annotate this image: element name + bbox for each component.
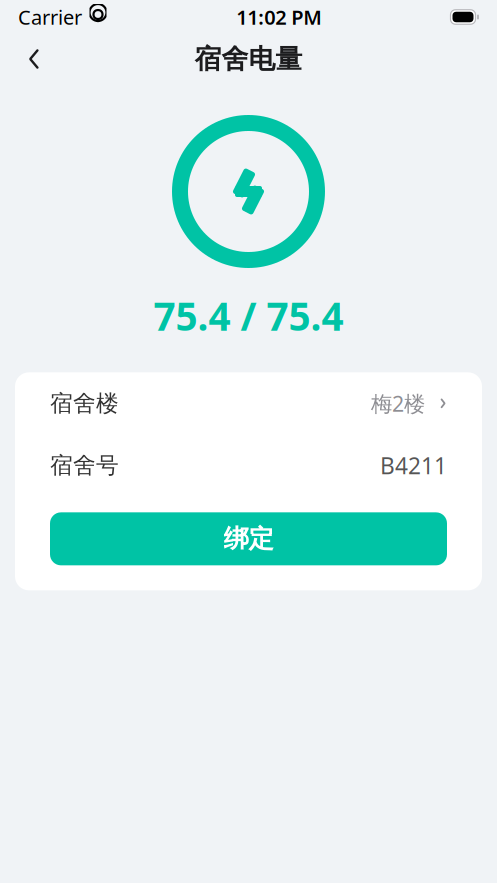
staticText: 绑定 xyxy=(223,523,273,554)
staticText: Carrier xyxy=(18,4,82,30)
staticText: 宿舍电量 xyxy=(194,43,302,75)
button[interactable]: 返回 xyxy=(12,37,56,81)
button[interactable]: 绑定 xyxy=(50,512,447,565)
button[interactable]: 宿舍楼 xyxy=(15,372,482,434)
staticText: 宿舍楼 xyxy=(50,389,119,417)
staticText: 宿舍号 xyxy=(50,451,119,479)
staticText: B4211 xyxy=(380,450,447,480)
staticText: 11:02 PM xyxy=(236,4,322,30)
staticText: 梅2楼 xyxy=(371,389,425,417)
staticText: 75.4 / 75.4 xyxy=(153,290,343,341)
